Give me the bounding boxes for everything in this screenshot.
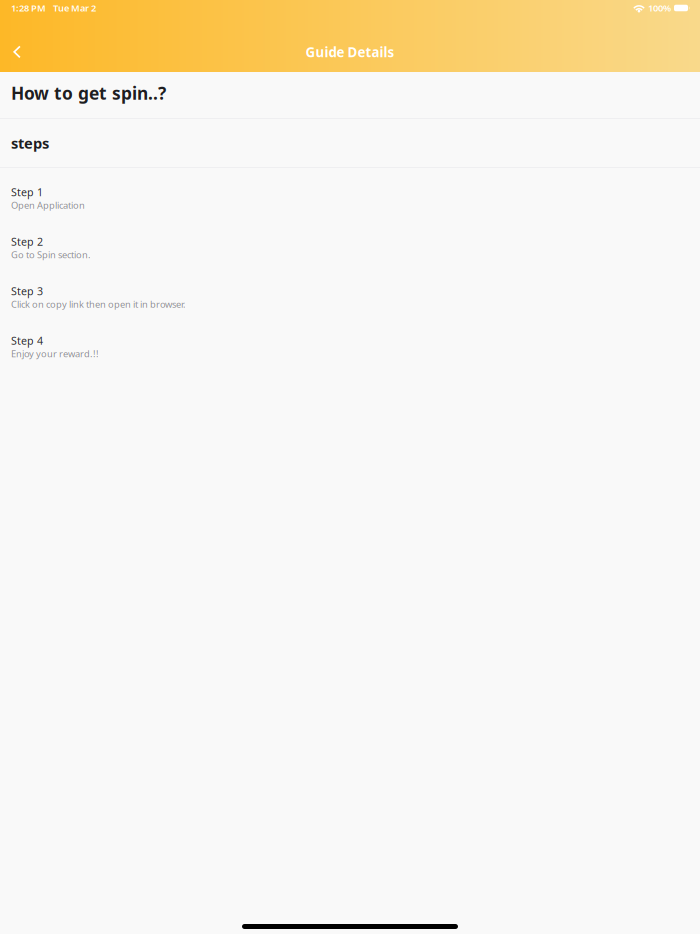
staticText: How to get spin..? xyxy=(11,81,166,104)
staticText: Click on copy link then open it in brows… xyxy=(11,298,186,310)
staticText: Step 3 xyxy=(11,284,43,298)
staticText: Tue Mar 2 xyxy=(53,2,96,14)
staticText: 100% xyxy=(648,2,671,14)
staticText: Guide Details xyxy=(305,43,394,61)
staticText: Step 2 xyxy=(11,234,43,249)
staticText: 1:28 PM xyxy=(11,2,46,14)
staticText: Open Application xyxy=(11,199,85,211)
button[interactable]: Step 1 xyxy=(0,168,700,217)
button[interactable]: Step 3 xyxy=(0,267,700,316)
staticText: Enjoy your reward.!! xyxy=(11,347,99,360)
staticText: steps xyxy=(11,133,49,153)
button[interactable]: Step 2 xyxy=(0,217,700,267)
staticText: Step 4 xyxy=(11,333,43,348)
button[interactable]: Step 4 xyxy=(0,316,700,366)
staticText: Step 1 xyxy=(11,185,43,199)
button[interactable]: Back xyxy=(0,32,34,72)
staticText: Go to Spin section. xyxy=(11,248,91,261)
